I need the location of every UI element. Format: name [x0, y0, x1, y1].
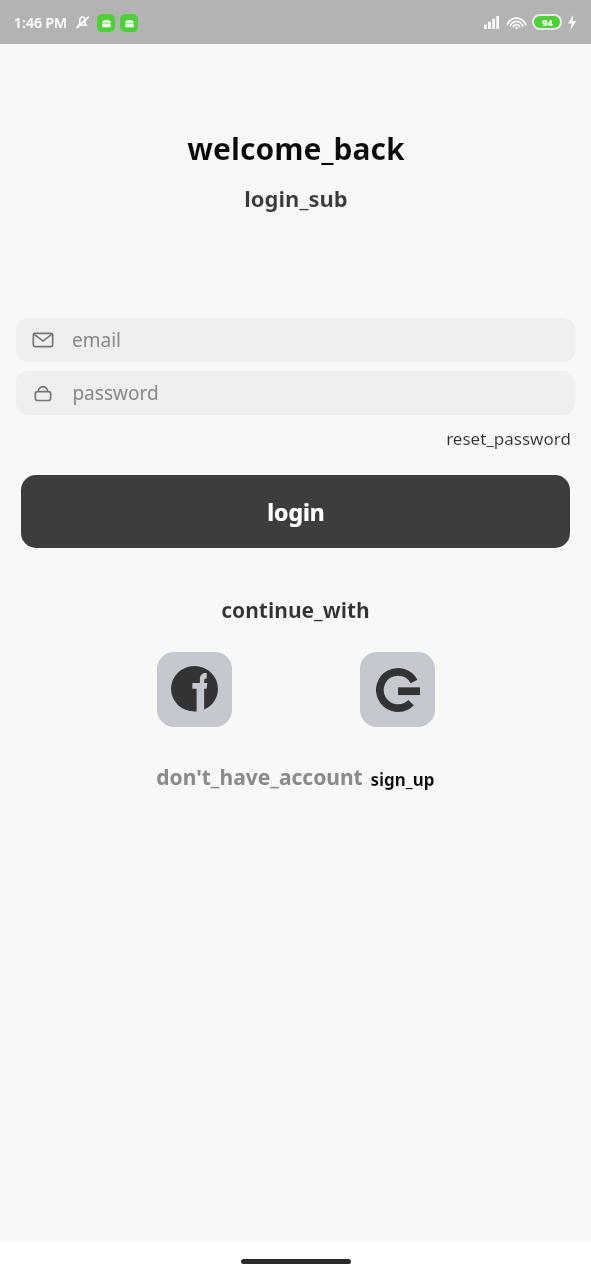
staticText: welcome_back — [187, 128, 405, 169]
staticText: login — [267, 496, 325, 527]
button[interactable]: sign_up — [370, 768, 435, 792]
button[interactable]: login — [21, 475, 570, 548]
button[interactable]: password — [16, 371, 575, 415]
staticText: 94 — [542, 16, 553, 28]
staticText: login_sub — [244, 183, 348, 213]
staticText: don't_have_account — [156, 763, 363, 792]
button[interactable]: email — [16, 318, 575, 362]
staticText: password — [72, 380, 159, 406]
button[interactable]: Continue with Google — [360, 652, 435, 727]
staticText: continue_with — [221, 596, 370, 625]
staticText: email — [72, 327, 121, 353]
button[interactable]: reset_password — [442, 424, 575, 453]
staticText: 1:46 PM — [14, 13, 67, 32]
button[interactable]: Continue with Facebook — [157, 652, 232, 727]
